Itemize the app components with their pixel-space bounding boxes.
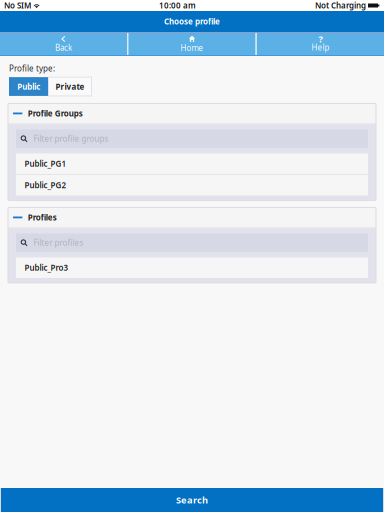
button[interactable]: Filter profiles — [16, 233, 368, 252]
button[interactable]: Public_PG2 — [16, 175, 368, 195]
staticText: Public_Pro3 — [24, 262, 68, 273]
staticText: Choose profile — [164, 16, 220, 27]
staticText: Private — [55, 81, 84, 92]
staticText: Filter profiles — [33, 237, 83, 248]
staticText: No SIM — [4, 0, 31, 11]
staticText: Help — [311, 42, 329, 53]
button[interactable]: Home — [128, 33, 255, 55]
button[interactable]: Back — [0, 33, 127, 55]
staticText: Home — [180, 43, 203, 53]
button[interactable]: Public — [9, 77, 48, 96]
staticText: Back — [55, 42, 72, 53]
staticText: Not Charging — [315, 0, 366, 11]
button[interactable]: Private — [48, 77, 91, 96]
staticText: Profiles — [28, 212, 57, 223]
staticText: Public_PG2 — [24, 180, 66, 190]
staticText: Filter profile groups — [33, 133, 108, 144]
button[interactable]: Profiles — [8, 207, 376, 227]
staticText: Public — [17, 81, 40, 92]
button[interactable]: Filter profile groups — [16, 129, 368, 148]
button[interactable]: Public_PG1 — [16, 153, 368, 174]
button[interactable]: Search — [0, 488, 384, 512]
staticText: Search — [176, 494, 208, 506]
button[interactable]: Profile Groups — [8, 103, 376, 123]
button[interactable]: Help — [257, 33, 384, 55]
button[interactable]: Public_Pro3 — [16, 257, 368, 278]
staticText: Public_PG1 — [24, 158, 66, 169]
staticText: Profile type: — [9, 63, 55, 74]
staticText: 10:00 am — [159, 0, 196, 11]
staticText: Profile Groups — [28, 108, 83, 119]
staticText: ? — [318, 33, 322, 45]
